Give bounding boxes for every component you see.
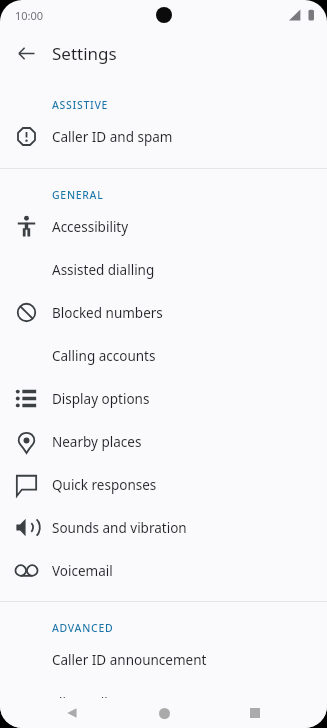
button[interactable]: Caller ID announcement	[0, 638, 327, 681]
button[interactable]: Caller ID and spam	[0, 115, 327, 158]
staticText: GENERAL	[52, 188, 104, 202]
staticText: Calling accounts	[52, 347, 156, 365]
staticText: Settings	[52, 42, 117, 65]
button[interactable]: Recents	[235, 698, 275, 728]
button[interactable]: Back	[52, 698, 92, 728]
button[interactable]: Accessibility	[0, 205, 327, 248]
staticText: ADVANCED	[52, 621, 114, 635]
staticText: Nearby places	[52, 433, 142, 451]
staticText: Assisted dialling	[52, 261, 155, 279]
button[interactable]: Nearby places	[0, 420, 327, 463]
staticText: Accessibility	[52, 218, 129, 236]
staticText: Voicemail	[52, 562, 113, 580]
button[interactable]: Calling accounts	[0, 334, 327, 377]
button[interactable]: Assisted dialling	[0, 248, 327, 291]
button[interactable]: Back	[0, 30, 52, 77]
button[interactable]: Sounds and vibration	[0, 506, 327, 549]
staticText: Flip to silence	[52, 694, 138, 712]
staticText: Blocked numbers	[52, 304, 163, 322]
staticText: Quick responses	[52, 476, 157, 494]
button[interactable]: Home	[144, 698, 184, 728]
staticText: Caller ID announcement	[52, 651, 207, 669]
staticText: Caller ID and spam	[52, 128, 173, 146]
button[interactable]: Flip to silence	[0, 681, 327, 724]
button[interactable]: Blocked numbers	[0, 291, 327, 334]
staticText: Sounds and vibration	[52, 519, 187, 537]
button[interactable]: Quick responses	[0, 463, 327, 506]
staticText: ASSISTIVE	[52, 98, 109, 112]
button[interactable]: Display options	[0, 377, 327, 420]
staticText: Display options	[52, 390, 150, 408]
staticText: 10:00	[15, 8, 44, 23]
button[interactable]: Voicemail	[0, 549, 327, 592]
